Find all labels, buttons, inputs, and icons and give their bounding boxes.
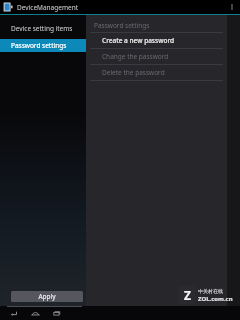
staticText: 中关村在线 — [198, 288, 223, 294]
button[interactable]: Device setting items — [0, 22, 86, 35]
staticText: Apply — [38, 292, 56, 301]
button[interactable]: Delete the password — [86, 65, 227, 80]
button[interactable]: Apply — [11, 291, 83, 302]
button[interactable]: Back — [6, 307, 22, 320]
button[interactable]: Home — [27, 307, 43, 320]
staticText: Z — [184, 287, 191, 303]
staticText: Device setting items — [11, 24, 73, 33]
button[interactable]: Recent apps — [48, 307, 64, 320]
button[interactable]: Create a new password — [86, 33, 227, 48]
staticText: Change the password — [102, 52, 169, 61]
button[interactable]: Change the password — [86, 49, 227, 64]
staticText: DeviceManagement — [17, 3, 79, 12]
staticText: Password settings — [11, 41, 67, 50]
button[interactable]: Password settings — [0, 39, 86, 52]
staticText: ZOL.com.cn — [198, 295, 233, 303]
staticText: Create a new password — [102, 36, 175, 45]
staticText: Password settings — [94, 21, 150, 30]
button[interactable]: More options — [225, 0, 239, 14]
staticText: Delete the password — [102, 68, 165, 77]
